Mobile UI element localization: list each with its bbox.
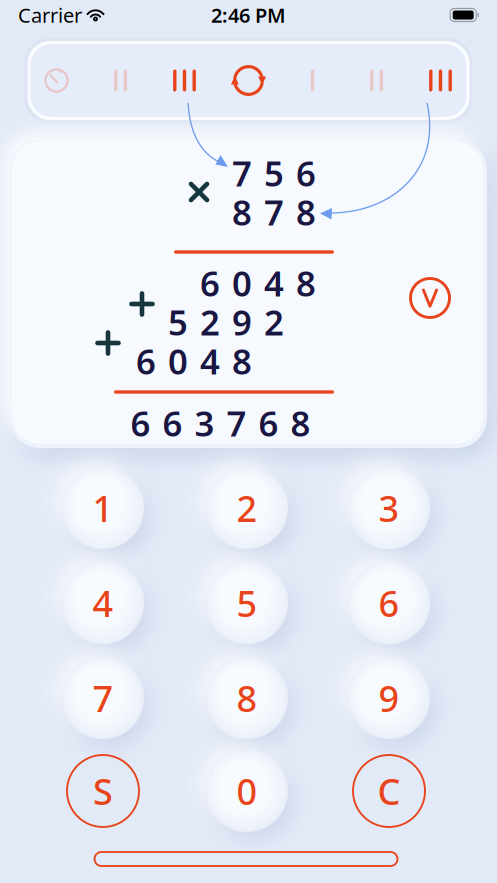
button[interactable]: 0 — [187, 731, 307, 851]
staticText: 6 — [130, 400, 150, 446]
staticText: 8 — [296, 189, 316, 235]
staticText: 5 — [236, 579, 257, 627]
staticText: Carrier — [18, 2, 82, 28]
staticText: 7 — [264, 189, 284, 235]
staticText: 2 — [264, 299, 284, 345]
button[interactable]: History — [24, 38, 88, 123]
button[interactable]: Check answer — [406, 274, 454, 322]
staticText: 0 — [168, 338, 188, 384]
staticText: 8 — [232, 189, 252, 235]
staticText: 0 — [232, 260, 252, 306]
button[interactable]: One digit second operand — [280, 38, 344, 123]
staticText: 6 — [162, 400, 182, 446]
staticText: 9 — [232, 299, 252, 345]
staticText: 5 — [264, 150, 284, 196]
staticText: 2:46 PM — [211, 2, 286, 28]
staticText: 8 — [232, 338, 252, 384]
staticText: 8 — [296, 260, 316, 306]
staticText: 7 — [232, 150, 252, 196]
button[interactable]: Two digit first operand — [88, 38, 152, 123]
staticText: 6 — [378, 579, 399, 627]
staticText: C — [377, 767, 400, 815]
staticText: 1 — [92, 484, 113, 532]
button[interactable]: 5 — [187, 543, 307, 663]
button[interactable]: Swap operands — [216, 38, 280, 123]
staticText: 8 — [290, 400, 310, 446]
button[interactable]: 2 — [187, 448, 307, 568]
staticText: 6 — [136, 338, 156, 384]
staticText: 0 — [236, 767, 257, 815]
button[interactable]: 4 — [43, 543, 163, 663]
staticText: 6 — [200, 260, 220, 306]
button[interactable]: 9 — [329, 638, 449, 758]
staticText: 3 — [194, 400, 214, 446]
staticText: 6 — [258, 400, 278, 446]
staticText: 7 — [92, 674, 113, 722]
button[interactable]: 8 — [187, 638, 307, 758]
staticText: S — [93, 767, 113, 815]
staticText: 7 — [226, 400, 246, 446]
staticText: 4 — [264, 260, 284, 306]
staticText: 6 — [296, 150, 316, 196]
button[interactable]: 7 — [43, 638, 163, 758]
staticText: 2 — [200, 299, 220, 345]
button[interactable]: Three digit second operand — [408, 38, 472, 123]
staticText: 8 — [236, 674, 257, 722]
staticText: 9 — [378, 674, 399, 722]
staticText: 5 — [168, 299, 188, 345]
button[interactable]: 6 — [329, 543, 449, 663]
staticText: 3 — [378, 484, 399, 532]
button[interactable]: Two digit second operand — [344, 38, 408, 123]
button[interactable]: 1 — [43, 448, 163, 568]
button[interactable]: Three digit first operand — [152, 38, 216, 123]
staticText: 4 — [92, 579, 113, 627]
staticText: 2 — [236, 484, 257, 532]
button[interactable]: S — [58, 746, 148, 836]
staticText: 4 — [200, 338, 220, 384]
button[interactable]: C — [344, 746, 434, 836]
button[interactable]: 3 — [329, 448, 449, 568]
